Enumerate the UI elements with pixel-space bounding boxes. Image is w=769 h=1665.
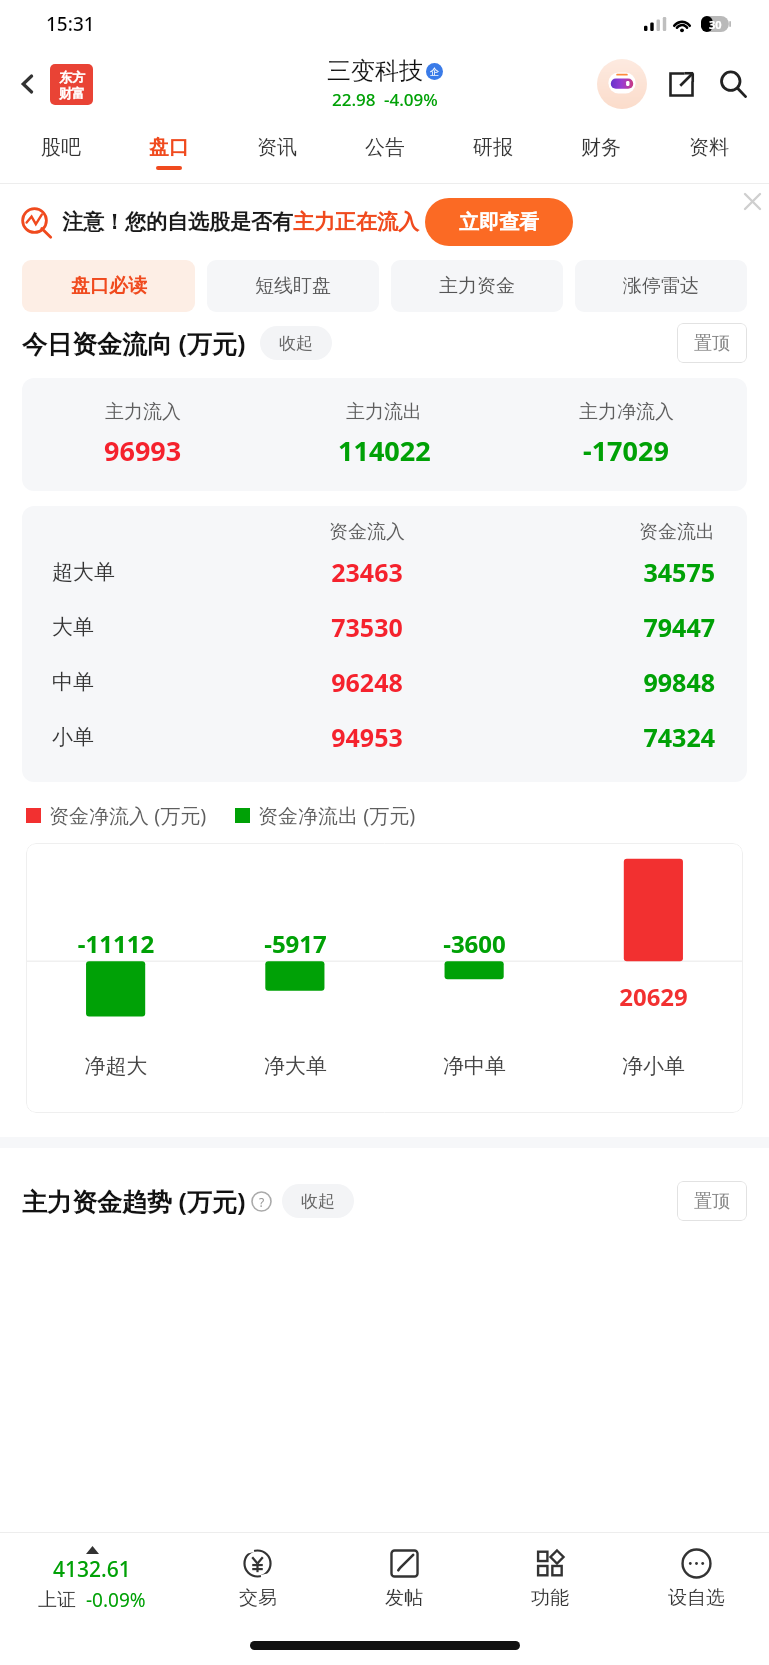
staticText: 超大单 xyxy=(52,559,251,585)
button[interactable]: 公告 xyxy=(331,121,439,183)
button[interactable]: 东方财富 xyxy=(50,64,93,105)
staticText: 企 xyxy=(430,66,439,77)
staticText: 99848 xyxy=(483,665,715,699)
button[interactable]: 交易 xyxy=(184,1533,331,1625)
staticText: 主力正在流入 xyxy=(293,209,419,235)
button[interactable]: 立即查看 xyxy=(425,198,573,246)
staticText: 20629 xyxy=(564,980,743,1013)
staticText: 收起 xyxy=(301,1191,335,1212)
button[interactable]: 4132.61 xyxy=(0,1533,184,1625)
staticText: 96993 xyxy=(104,432,182,469)
button[interactable]: 帮助 xyxy=(251,1191,272,1212)
staticText: -4.09% xyxy=(384,88,438,111)
staticText: 主力资金 xyxy=(439,274,515,298)
staticText: 资金流出 xyxy=(483,520,715,544)
button[interactable]: 分享 xyxy=(661,64,701,104)
staticText: 东方 xyxy=(59,69,85,85)
button[interactable]: 收起 xyxy=(260,326,332,360)
staticText: ? xyxy=(259,1194,265,1210)
button[interactable]: 发帖 xyxy=(331,1533,477,1625)
button[interactable]: 资讯 xyxy=(223,121,331,183)
button[interactable]: 盘口必读 xyxy=(22,260,195,312)
staticText: 30 xyxy=(709,17,722,32)
staticText: -0.09% xyxy=(86,1587,146,1613)
staticText: 主力资金趋势 (万元) xyxy=(22,1184,246,1218)
staticText: 净中单 xyxy=(385,1053,564,1079)
button[interactable]: 收起 xyxy=(282,1184,354,1218)
staticText: 短线盯盘 xyxy=(255,274,331,298)
staticText: 置顶 xyxy=(694,1190,730,1213)
button[interactable]: 盘口 xyxy=(115,121,223,183)
button[interactable]: 搜索 xyxy=(711,62,755,106)
staticText: 34575 xyxy=(483,555,715,589)
staticText: 研报 xyxy=(473,135,513,160)
staticText: 收起 xyxy=(279,333,313,354)
staticText: 114022 xyxy=(338,432,431,469)
staticText: 73530 xyxy=(251,610,483,644)
staticText: 96248 xyxy=(251,665,483,699)
staticText: 交易 xyxy=(239,1586,277,1610)
staticText: 财务 xyxy=(581,135,621,160)
staticText: 资讯 xyxy=(257,135,297,160)
staticText: 公告 xyxy=(365,135,405,160)
button[interactable]: 主力资金 xyxy=(391,260,563,312)
button[interactable]: 关闭 xyxy=(735,184,769,218)
staticText: 净超大 xyxy=(26,1053,206,1079)
staticText: 盘口必读 xyxy=(71,274,147,298)
staticText: 股吧 xyxy=(41,135,81,160)
staticText: 注意！您的自选股是否有 xyxy=(62,209,293,235)
staticText: -11112 xyxy=(26,927,206,960)
staticText: 94953 xyxy=(251,720,483,754)
staticText: 资金净流出 (万元) xyxy=(258,802,416,829)
staticText: 23463 xyxy=(251,555,483,589)
staticText: 22.98 xyxy=(332,88,376,111)
staticText: 资金净流入 (万元) xyxy=(49,802,207,829)
button[interactable]: 功能 xyxy=(477,1533,623,1625)
staticText: 4132.61 xyxy=(53,1555,131,1584)
button[interactable]: 资金流入 xyxy=(22,520,747,764)
staticText: 中单 xyxy=(52,669,251,695)
staticText: 发帖 xyxy=(385,1586,423,1610)
button[interactable]: 涨停雷达 xyxy=(575,260,747,312)
staticText: 大单 xyxy=(52,614,251,640)
staticText: -5917 xyxy=(206,927,385,960)
button[interactable]: 短线盯盘 xyxy=(207,260,379,312)
staticText: 盘口 xyxy=(149,135,189,160)
staticText: 主力净流入 xyxy=(579,400,674,424)
staticText: 财富 xyxy=(59,85,85,101)
staticText: 功能 xyxy=(531,1586,569,1610)
staticText: 设自选 xyxy=(668,1586,725,1610)
staticText: 三变科技 xyxy=(327,56,423,86)
button[interactable]: AI助手 xyxy=(597,59,647,109)
staticText: -17029 xyxy=(583,432,669,469)
staticText: 74324 xyxy=(483,720,715,754)
staticText: 涨停雷达 xyxy=(623,274,699,298)
button[interactable]: 股吧 xyxy=(6,121,115,183)
button[interactable]: -11112 xyxy=(26,843,743,1113)
staticText: 上证 xyxy=(38,1588,76,1612)
staticText: 立即查看 xyxy=(459,210,539,235)
button[interactable]: 主力流入 xyxy=(22,378,747,491)
button[interactable]: 设自选 xyxy=(623,1533,769,1625)
staticText: 净大单 xyxy=(206,1053,385,1079)
staticText: 小单 xyxy=(52,724,251,750)
button[interactable]: 注意！您的自选股是否有 xyxy=(20,184,755,260)
staticText: 79447 xyxy=(483,610,715,644)
staticText: 15:31 xyxy=(46,11,95,37)
button[interactable]: 置顶 xyxy=(677,323,747,363)
staticText: -3600 xyxy=(385,927,564,960)
staticText: 资料 xyxy=(689,135,729,160)
staticText: 主力流出 xyxy=(346,400,422,424)
staticText: 净小单 xyxy=(564,1053,743,1079)
staticText: 置顶 xyxy=(694,332,730,355)
button[interactable]: 返回 xyxy=(6,62,50,106)
button[interactable]: 资料 xyxy=(655,121,763,183)
staticText: 资金流入 xyxy=(251,520,483,544)
staticText: 主力流入 xyxy=(105,400,181,424)
button[interactable]: 财务 xyxy=(547,121,655,183)
button[interactable]: 置顶 xyxy=(677,1181,747,1221)
button[interactable]: 研报 xyxy=(439,121,547,183)
staticText: 今日资金流向 (万元) xyxy=(22,326,246,360)
